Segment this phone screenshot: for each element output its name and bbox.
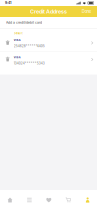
button[interactable]: Add a credit/debit card xyxy=(0,17,97,29)
staticText: Credit Address xyxy=(30,8,67,15)
staticText: VISA xyxy=(14,39,21,42)
button[interactable]: Cart xyxy=(58,190,78,210)
staticText: VISA xyxy=(14,56,21,59)
staticText: Add a credit/debit card xyxy=(6,21,42,25)
button[interactable]: Home xyxy=(0,190,20,210)
button[interactable]: Done xyxy=(77,6,97,17)
button[interactable]: Orders xyxy=(20,190,39,210)
staticText: 9:41 xyxy=(5,1,11,5)
staticText: Done xyxy=(82,9,91,14)
button[interactable]: Profile xyxy=(78,190,97,210)
button[interactable]: Favorites xyxy=(39,190,58,210)
staticText: 134024******5343 xyxy=(14,61,45,65)
button[interactable]: VISA xyxy=(0,51,97,74)
button[interactable]: Default xyxy=(0,29,97,51)
staticText: 254628******4405 xyxy=(14,44,45,48)
staticText: Default xyxy=(14,32,23,35)
